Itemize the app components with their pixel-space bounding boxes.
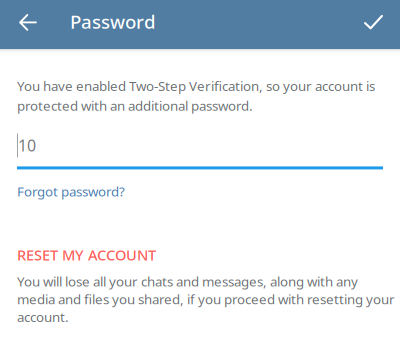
staticText: Password [70,9,156,34]
button[interactable]: Password field [17,114,383,169]
staticText: You will lose all your chats and message… [17,273,395,326]
staticText: Forgot password? [17,182,125,200]
button[interactable]: RESET MY ACCOUNT [17,242,156,268]
staticText: 10 [18,135,36,156]
staticText: RESET MY ACCOUNT [17,245,156,265]
button[interactable]: Back [0,5,70,54]
staticText: You have enabled Two-Step Verification, … [17,77,375,114]
button[interactable]: Forgot password? [17,169,125,203]
button[interactable]: Save password [346,5,400,54]
